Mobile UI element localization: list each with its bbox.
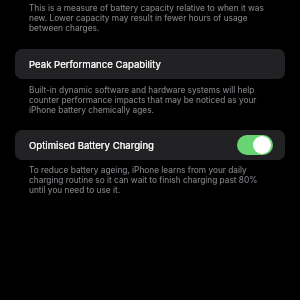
button[interactable]: Optimised Battery Charging toggle, on: [237, 135, 273, 155]
staticText: To reduce battery ageing, iPhone learns …: [29, 165, 276, 195]
staticText: Peak Performance Capability: [29, 59, 161, 71]
staticText: Optimised Battery Charging: [29, 140, 154, 152]
button[interactable]: Peak Performance Capability: [15, 49, 285, 79]
staticText: This is a measure of battery capacity re…: [29, 3, 276, 33]
staticText: Built-in dynamic software and hardware s…: [29, 85, 276, 115]
button[interactable]: Optimised Battery Charging: [15, 130, 285, 160]
